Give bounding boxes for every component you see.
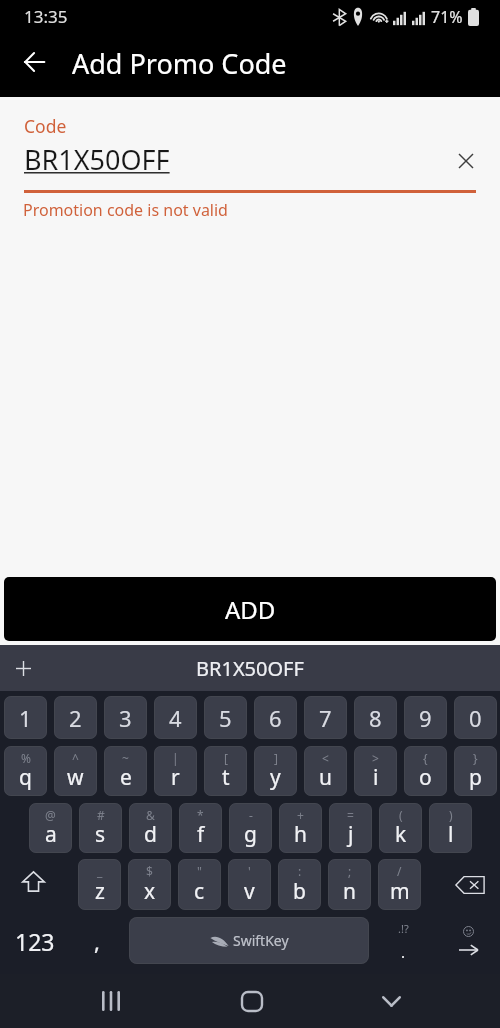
staticText: 13:35 bbox=[24, 5, 68, 28]
staticText: q bbox=[19, 763, 32, 792]
staticText: # bbox=[97, 807, 105, 823]
button[interactable]: ^ bbox=[54, 746, 97, 796]
staticText: @ bbox=[45, 807, 56, 823]
button[interactable]: Add bbox=[4, 649, 42, 687]
staticText: 3 bbox=[119, 703, 132, 733]
staticText: l bbox=[448, 820, 454, 849]
staticText: v bbox=[244, 877, 255, 906]
staticText: h bbox=[294, 820, 307, 849]
staticText: ] bbox=[274, 750, 278, 766]
button[interactable]: $ bbox=[128, 859, 171, 910]
button[interactable]: _ bbox=[78, 859, 121, 910]
staticText: ' bbox=[248, 863, 251, 879]
button[interactable]: : bbox=[278, 859, 321, 910]
staticText: & bbox=[146, 807, 155, 823]
staticText: c bbox=[194, 877, 205, 906]
button[interactable]: , bbox=[72, 916, 122, 966]
button[interactable]: Recents bbox=[83, 974, 139, 1028]
button[interactable]: 123 bbox=[0, 916, 70, 966]
button[interactable]: ADD bbox=[4, 577, 496, 641]
staticText: j bbox=[348, 820, 354, 849]
button[interactable]: [ bbox=[204, 746, 247, 796]
staticText: _ bbox=[97, 863, 103, 879]
staticText: 71% bbox=[431, 6, 463, 28]
button[interactable]: - bbox=[229, 803, 272, 853]
button[interactable]: 3 bbox=[104, 696, 147, 739]
button[interactable]: Hide keyboard bbox=[363, 974, 419, 1028]
staticText: m bbox=[390, 877, 410, 906]
staticText: 0 bbox=[469, 703, 482, 733]
staticText: a bbox=[45, 820, 57, 849]
staticText: Add Promo Code bbox=[72, 45, 287, 82]
staticText: s bbox=[95, 820, 106, 849]
staticText: - bbox=[249, 807, 253, 823]
button[interactable]: = bbox=[329, 803, 372, 853]
staticText: 8 bbox=[369, 703, 382, 733]
button[interactable]: | bbox=[154, 746, 197, 796]
staticText: Promotion code is not valid bbox=[23, 199, 228, 221]
staticText: " bbox=[197, 863, 202, 879]
staticText: ADD bbox=[225, 593, 276, 626]
button[interactable]: > bbox=[354, 746, 397, 796]
button[interactable]: Shift bbox=[8, 856, 58, 907]
staticText: * bbox=[197, 807, 204, 823]
button[interactable]: Space bbox=[129, 917, 369, 964]
staticText: 5 bbox=[219, 703, 232, 733]
staticText: SwiftKey bbox=[233, 931, 289, 950]
button[interactable]: 7 bbox=[304, 696, 347, 739]
button[interactable]: < bbox=[304, 746, 347, 796]
button[interactable]: 0 bbox=[454, 696, 497, 739]
staticText: ( bbox=[399, 807, 403, 823]
button[interactable]: } bbox=[454, 746, 497, 796]
button[interactable]: Enter bbox=[440, 916, 496, 966]
staticText: . bbox=[401, 942, 406, 962]
button[interactable]: @ bbox=[29, 803, 72, 853]
button[interactable]: ( bbox=[379, 803, 422, 853]
button[interactable]: 4 bbox=[154, 696, 197, 739]
button[interactable]: { bbox=[404, 746, 447, 796]
staticText: u bbox=[319, 763, 332, 792]
button[interactable]: 8 bbox=[354, 696, 397, 739]
button[interactable]: ; bbox=[328, 859, 371, 910]
button[interactable]: 5 bbox=[204, 696, 247, 739]
staticText: 7 bbox=[319, 703, 332, 733]
staticText: = bbox=[347, 807, 354, 823]
button[interactable]: / bbox=[378, 859, 421, 910]
button[interactable]: ' bbox=[228, 859, 271, 910]
button[interactable]: ] bbox=[254, 746, 297, 796]
button[interactable]: " bbox=[178, 859, 221, 910]
staticText: w bbox=[67, 763, 84, 792]
staticText: 6 bbox=[269, 703, 282, 733]
button[interactable]: 2 bbox=[54, 696, 97, 739]
button[interactable]: ) bbox=[429, 803, 472, 853]
staticText: o bbox=[419, 763, 432, 792]
staticText: BR1X50OFF bbox=[196, 655, 304, 682]
staticText: d bbox=[144, 820, 157, 849]
button[interactable]: Back bbox=[10, 38, 58, 86]
staticText: g bbox=[244, 820, 257, 849]
button[interactable]: Home bbox=[224, 974, 280, 1028]
button[interactable]: * bbox=[179, 803, 222, 853]
button[interactable]: .!? bbox=[378, 916, 428, 966]
staticText: 9 bbox=[419, 703, 432, 733]
staticText: 4 bbox=[169, 703, 182, 733]
button[interactable]: 1 bbox=[4, 696, 47, 739]
staticText: BR1X50OFF bbox=[24, 141, 170, 178]
button[interactable]: & bbox=[129, 803, 172, 853]
staticText: p bbox=[469, 763, 482, 792]
staticText: ~ bbox=[122, 750, 129, 766]
staticText: z bbox=[95, 877, 105, 906]
staticText: [ bbox=[224, 750, 228, 766]
staticText: t bbox=[222, 763, 230, 792]
button[interactable]: + bbox=[279, 803, 322, 853]
button[interactable]: Clear bbox=[452, 147, 480, 175]
button[interactable]: 9 bbox=[404, 696, 447, 739]
button[interactable]: ~ bbox=[104, 746, 147, 796]
button[interactable]: # bbox=[79, 803, 122, 853]
staticText: k bbox=[395, 820, 407, 849]
staticText: : bbox=[298, 863, 302, 879]
button[interactable]: % bbox=[4, 746, 47, 796]
button[interactable]: 6 bbox=[254, 696, 297, 739]
staticText: f bbox=[197, 820, 205, 849]
button[interactable]: Backspace bbox=[443, 859, 496, 910]
